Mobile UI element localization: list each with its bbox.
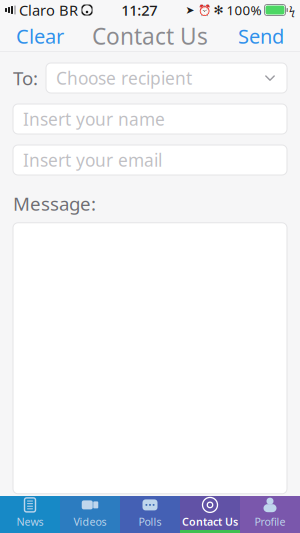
staticText: To: xyxy=(13,66,38,90)
staticText: ϟ xyxy=(289,3,295,17)
staticText: ⏰ xyxy=(197,4,210,16)
button[interactable]: News xyxy=(0,496,60,533)
staticText: Choose recipient xyxy=(56,66,192,89)
staticText: Insert your email xyxy=(23,148,162,171)
staticText: Contact Us xyxy=(92,21,208,51)
button[interactable]: Contact Us xyxy=(180,496,240,533)
button[interactable]: Insert your email xyxy=(13,145,287,175)
staticText: Contact Us xyxy=(182,514,238,529)
staticText: News xyxy=(16,514,43,529)
button[interactable]: Videos xyxy=(60,496,120,533)
button[interactable]: Insert your name xyxy=(13,104,287,134)
staticText: ✻ xyxy=(213,3,223,17)
staticText: 11:27 xyxy=(121,0,157,20)
staticText: Videos xyxy=(73,514,106,529)
staticText: ➤ xyxy=(185,4,194,16)
staticText: Insert your name xyxy=(23,107,165,130)
staticText: Polls xyxy=(138,514,161,529)
button[interactable]: Send xyxy=(230,17,292,55)
staticText: Send xyxy=(238,23,284,49)
button[interactable]: Clear xyxy=(8,17,72,55)
staticText: 100% xyxy=(226,1,261,19)
button[interactable]: Polls xyxy=(120,496,180,533)
button[interactable]: Profile xyxy=(240,496,300,533)
staticText: Claro BR xyxy=(19,0,78,20)
staticText: Profile xyxy=(254,514,285,529)
button[interactable]: Choose recipient xyxy=(46,63,287,93)
staticText: Message: xyxy=(13,191,96,216)
staticText: Clear xyxy=(16,23,64,49)
